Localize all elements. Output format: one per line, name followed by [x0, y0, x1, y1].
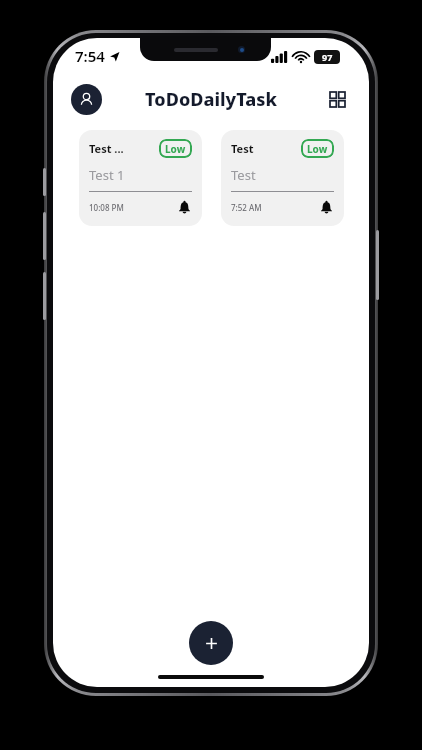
staticText: Test ...	[89, 141, 159, 156]
button[interactable]: Profile	[71, 84, 102, 115]
staticText: 97	[322, 51, 333, 63]
staticText: Low	[165, 142, 186, 156]
button[interactable]: Add task	[189, 621, 233, 665]
staticText: Low	[307, 142, 328, 156]
button[interactable]: Test	[221, 130, 344, 226]
button[interactable]: Test ...	[79, 130, 202, 226]
staticText: 7:52 AM	[231, 202, 318, 213]
button[interactable]: Grid view	[323, 85, 351, 113]
staticText: 7:54	[75, 46, 105, 66]
button[interactable]: Reminder	[318, 199, 334, 215]
button[interactable]: Reminder	[176, 199, 192, 215]
staticText: Test	[231, 141, 301, 156]
staticText: ToDoDailyTask	[145, 87, 277, 112]
staticText: Test	[231, 166, 256, 184]
staticText: Test 1	[89, 166, 125, 184]
staticText: 10:08 PM	[89, 202, 176, 213]
